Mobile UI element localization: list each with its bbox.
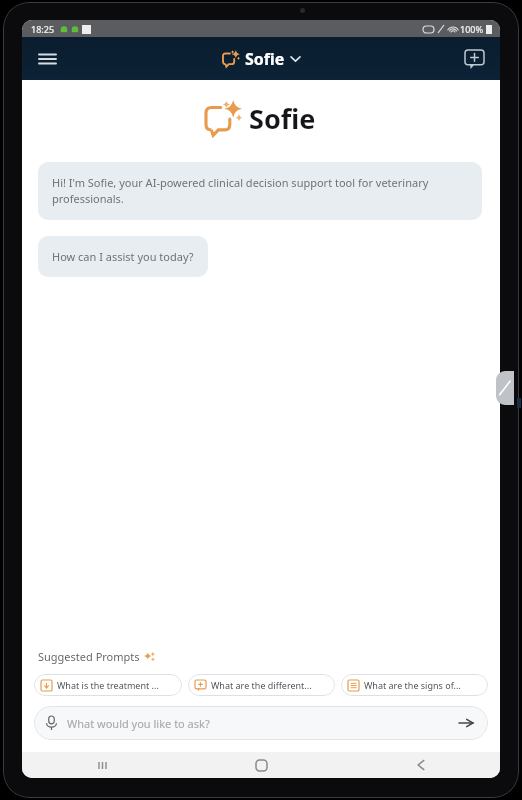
staticText: What are the signs of... — [364, 679, 461, 691]
staticText: How can I assist you today? — [52, 249, 194, 264]
staticText: Suggested Prompts — [38, 649, 140, 664]
button[interactable]: Sofie — [217, 45, 306, 73]
button[interactable]: Send — [456, 713, 476, 733]
button[interactable]: How can I assist you today? — [38, 236, 208, 277]
staticText: Hi! I'm Sofie, your AI-powered clinical … — [52, 175, 468, 207]
staticText: What are the different... — [211, 679, 312, 691]
button[interactable]: Recents — [22, 752, 182, 778]
staticText: What would you like to ask? — [67, 716, 210, 731]
button[interactable]: What is the treatment ... — [34, 674, 182, 696]
staticText: Sofie — [245, 48, 285, 70]
button[interactable]: Back — [341, 752, 500, 778]
button[interactable]: Home — [182, 752, 341, 778]
staticText: 100% — [460, 23, 484, 35]
button[interactable]: What are the different... — [188, 674, 335, 696]
button[interactable]: Menu — [30, 42, 64, 76]
staticText: What is the treatment ... — [57, 679, 159, 691]
button[interactable]: New chat — [458, 43, 490, 75]
button[interactable]: What would you like to ask? — [34, 706, 488, 740]
staticText: Sofie — [249, 100, 316, 137]
staticText: 18:25 — [31, 23, 55, 35]
button[interactable]: What are the signs of... — [341, 674, 488, 696]
button[interactable]: Hi! I'm Sofie, your AI-powered clinical … — [38, 162, 482, 220]
